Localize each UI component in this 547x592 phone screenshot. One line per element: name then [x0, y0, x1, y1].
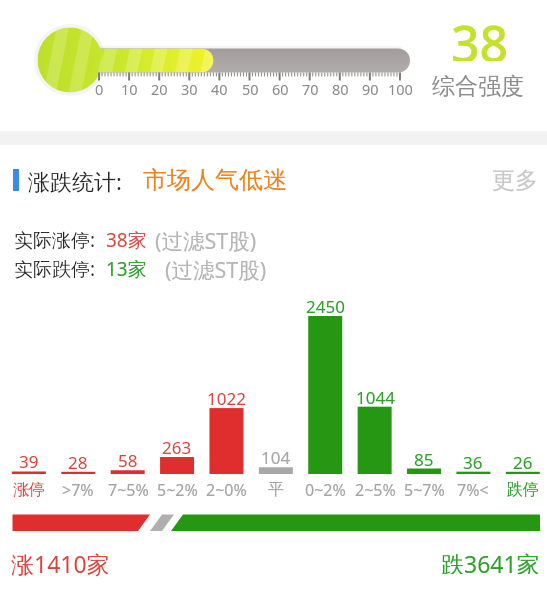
staticText: 实际跌停: — [14, 256, 96, 282]
staticText: 80 — [332, 79, 349, 97]
staticText: 0~2% — [305, 479, 346, 501]
staticText: 90 — [362, 79, 379, 97]
staticText: 36 — [463, 451, 483, 471]
button[interactable]: 7%< — [445, 479, 501, 501]
staticText: 85 — [414, 448, 434, 468]
button[interactable]: 2~0% — [198, 479, 254, 501]
staticText: 10 — [121, 79, 138, 97]
staticText: 实际涨停: — [14, 227, 96, 253]
staticText: 28 — [68, 451, 88, 471]
staticText: 2~0% — [206, 479, 247, 501]
staticText: 38 — [451, 9, 509, 61]
staticText: 50 — [242, 79, 259, 97]
staticText: 跌3641家 — [441, 548, 540, 574]
staticText: 7%< — [457, 479, 489, 501]
button[interactable]: 2~5% — [347, 479, 403, 501]
staticText: (过滤ST股) — [165, 255, 267, 284]
button[interactable]: 跌停 — [495, 479, 547, 501]
button[interactable]: >7% — [50, 479, 106, 501]
staticText: 涨停 — [13, 480, 45, 500]
button[interactable]: 7~5% — [100, 479, 156, 501]
staticText: 20 — [151, 79, 168, 97]
staticText: 涨跌统计: — [28, 166, 122, 196]
staticText: 更多 — [492, 166, 538, 195]
staticText: 涨1410家 — [11, 548, 110, 579]
staticText: (过滤ST股) — [155, 226, 257, 255]
button[interactable]: 更多 — [488, 164, 542, 196]
button[interactable]: 涨跌统计: — [8, 160, 308, 200]
button[interactable]: 平 — [248, 479, 304, 501]
staticText: 5~7% — [404, 479, 445, 501]
button[interactable]: 0~2% — [297, 479, 353, 501]
staticText: 38家 — [106, 227, 147, 253]
staticText: 1022 — [207, 387, 246, 407]
staticText: 39 — [19, 450, 39, 470]
staticText: 104 — [261, 446, 291, 466]
staticText: 综合强度 — [432, 72, 524, 98]
staticText: 100 — [388, 79, 413, 97]
staticText: 2450 — [306, 295, 345, 315]
staticText: 0 — [95, 79, 104, 97]
staticText: >7% — [62, 479, 94, 501]
staticText: 2~5% — [355, 479, 396, 501]
staticText: 5~2% — [157, 479, 198, 501]
button[interactable]: 5~7% — [396, 479, 452, 501]
staticText: 平 — [268, 480, 284, 500]
staticText: 70 — [302, 79, 319, 97]
staticText: 13家 — [106, 256, 147, 282]
staticText: 1044 — [356, 386, 395, 406]
staticText: 市场人气低迷 — [143, 165, 287, 195]
staticText: 60 — [272, 79, 289, 97]
button[interactable]: 5~2% — [149, 479, 205, 501]
button[interactable]: 涨停 — [1, 479, 57, 501]
staticText: 263 — [162, 436, 192, 456]
staticText: 40 — [211, 79, 228, 97]
staticText: 58 — [118, 449, 138, 469]
staticText: 跌停 — [507, 480, 539, 500]
staticText: 26 — [513, 451, 533, 471]
staticText: 30 — [181, 79, 198, 97]
staticText: 7~5% — [108, 479, 149, 501]
